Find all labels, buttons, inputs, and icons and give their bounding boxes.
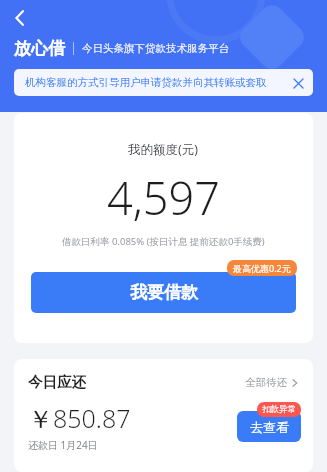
staticText: 最高优惠0.2元 <box>233 262 291 274</box>
button[interactable]: 我要借款 <box>31 272 296 313</box>
staticText: 扣款异常 <box>262 404 296 415</box>
staticText: 机构客服的方式引导用户申请贷款并向其转账或套取 <box>25 76 286 89</box>
staticText: 放心借 <box>14 38 65 59</box>
staticText: 今日应还 <box>28 373 86 391</box>
button[interactable]: Close notice <box>290 75 306 91</box>
button[interactable]: 全部待还 <box>243 374 301 391</box>
staticText: 我的额度(元) <box>128 141 199 158</box>
staticText: 借款日利率 0.085% (按日计息 提前还款0手续费) <box>62 235 265 248</box>
staticText: ￥850.87 <box>28 401 131 435</box>
staticText: 今日头条旗下贷款技术服务平台 <box>82 42 229 55</box>
button[interactable]: 去查看 <box>237 411 301 442</box>
staticText: 全部待还 <box>245 376 287 389</box>
button[interactable]: 机构客服的方式引导用户申请贷款并向其转账或套取 <box>14 69 313 96</box>
staticText: 4,597 <box>107 167 220 228</box>
staticText: 我要借款 <box>130 282 198 303</box>
staticText: 去查看 <box>250 419 289 435</box>
button[interactable]: Back <box>4 2 36 34</box>
staticText: 还款日 1月24日 <box>28 438 98 452</box>
